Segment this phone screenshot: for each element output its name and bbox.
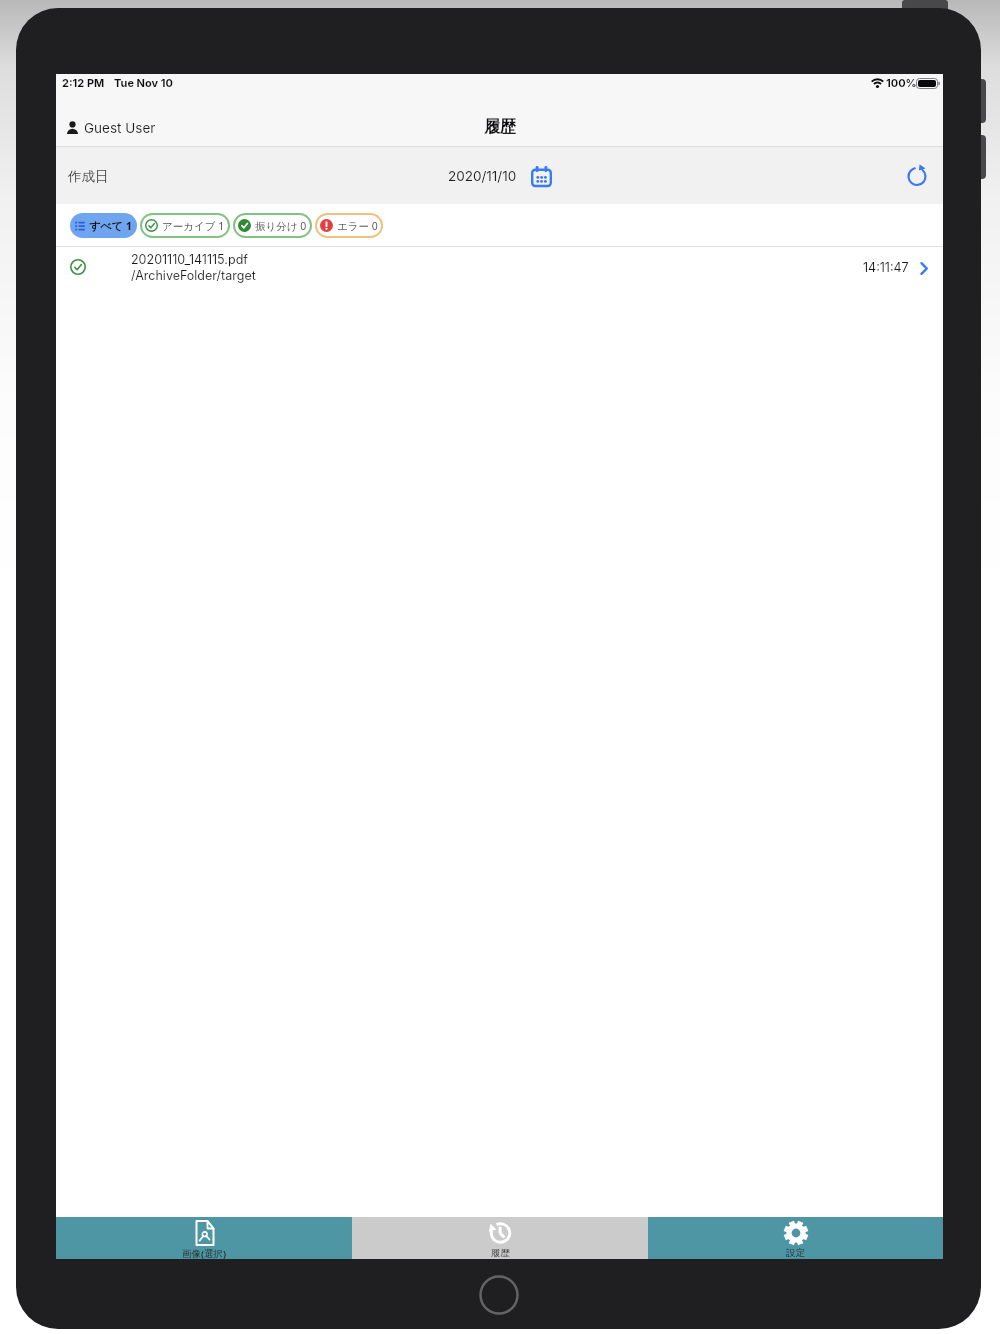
staticText: /ArchiveFolder/target xyxy=(131,268,256,283)
button[interactable]: エラー 0 xyxy=(315,213,383,238)
staticText: すべて 1 xyxy=(89,218,132,233)
staticText: 振り分け 0 xyxy=(255,219,307,233)
button[interactable]: 20201110_141115.pdf xyxy=(56,247,943,291)
staticText: 2:12 PM xyxy=(62,76,105,89)
staticText: エラー 0 xyxy=(337,219,378,233)
staticText: 20201110_141115.pdf xyxy=(131,252,248,267)
button[interactable]: 振り分け 0 xyxy=(233,213,312,238)
button[interactable]: アーカイブ 1 xyxy=(140,213,230,238)
button[interactable]: Guest User xyxy=(60,114,230,144)
button[interactable]: 2020/11/10 xyxy=(448,157,552,195)
staticText: 画像(選択) xyxy=(182,1247,227,1260)
staticText: 履歴 xyxy=(484,117,516,137)
staticText: Guest User xyxy=(84,120,156,136)
button[interactable] xyxy=(906,165,928,187)
staticText: 設定 xyxy=(786,1247,805,1259)
button[interactable]: 設定 xyxy=(648,1217,943,1259)
staticText: 履歴 xyxy=(491,1247,510,1259)
staticText: アーカイブ 1 xyxy=(162,219,225,233)
staticText: Tue Nov 10 xyxy=(114,76,173,89)
staticText: 14:11:47 xyxy=(863,260,909,275)
staticText: 2020/11/10 xyxy=(448,168,517,184)
staticText: 作成日 xyxy=(68,168,109,185)
button[interactable]: すべて 1 xyxy=(70,213,137,238)
button[interactable]: 履歴 xyxy=(352,1217,648,1259)
button[interactable]: 画像(選択) xyxy=(56,1217,352,1259)
staticText: 100% xyxy=(886,76,917,89)
